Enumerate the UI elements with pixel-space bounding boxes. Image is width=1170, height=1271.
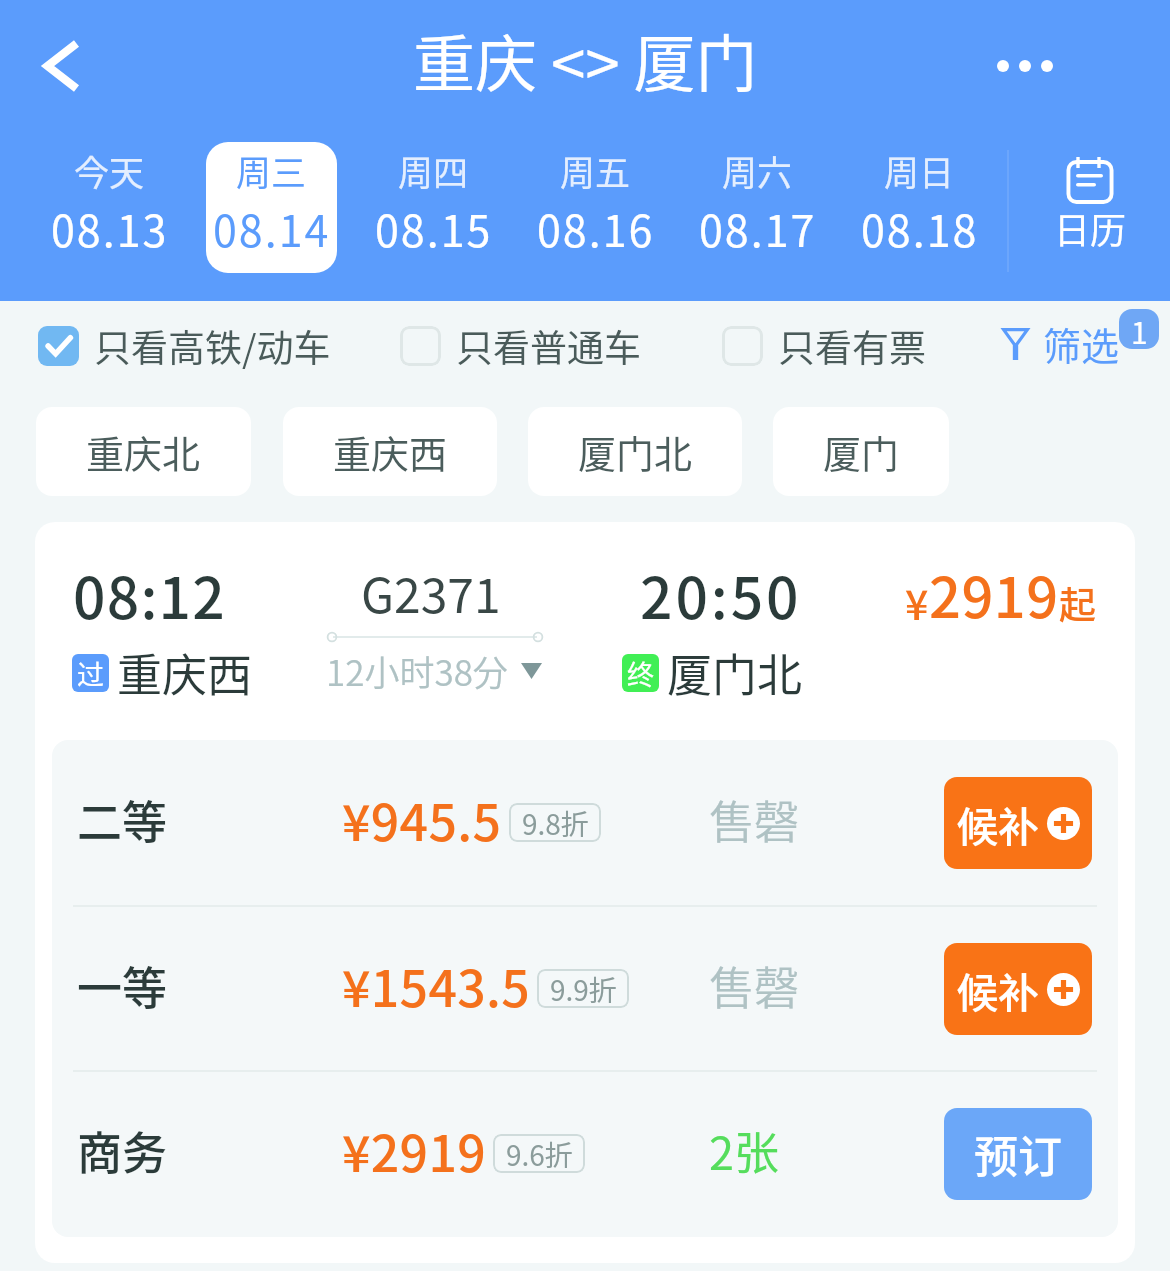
staticText: 候补 [957,794,1039,853]
staticText: 售磬 [709,787,800,852]
staticText: 周五 [560,145,631,196]
staticText: 重庆西 [333,424,448,479]
staticText: 厦门北 [667,640,803,705]
button[interactable]: 日历 [1010,148,1170,270]
staticText: 过 [77,654,104,692]
button[interactable]: 周日 [854,142,985,273]
staticText: 9.8折 [522,803,589,842]
staticText: ¥945.5 [342,783,502,855]
button[interactable]: 厦门北 [528,407,742,496]
button[interactable]: 08:12 [35,522,1135,740]
button[interactable]: More options [979,20,1071,112]
staticText: 今天 [74,145,145,196]
staticText: 一等 [77,953,168,1018]
staticText: 周六 [722,145,793,196]
staticText: 1 [1131,309,1148,349]
staticText: 售磬 [709,953,800,1018]
staticText: 08.14 [213,197,331,259]
staticText: 周三 [236,145,307,196]
button[interactable]: 重庆西 [283,407,497,496]
staticText: 9.9折 [550,969,617,1008]
staticText: 12小时38分 [326,645,508,696]
staticText: 日历 [1054,202,1127,254]
button[interactable]: 重庆北 [36,407,251,496]
staticText: 08.13 [51,197,169,259]
staticText: ¥2919 [342,1114,486,1186]
staticText: 2张 [709,1118,779,1183]
staticText: 厦门 [823,424,900,479]
button[interactable]: 周四 [368,142,499,273]
staticText: 重庆北 [86,424,201,479]
staticText: 周日 [884,145,955,196]
button[interactable]: 只看普通车 [400,319,641,373]
staticText: 终 [627,654,654,692]
staticText: 08.18 [861,197,979,259]
staticText: G2371 [361,557,501,627]
staticText: ¥ [905,572,929,631]
button[interactable]: 厦门 [773,407,949,496]
staticText: 只看有票 [778,319,926,373]
staticText: 候补 [957,960,1039,1019]
button[interactable]: 筛选 [1002,316,1120,371]
staticText: 20:50 [640,553,802,636]
staticText: 只看普通车 [456,319,641,373]
button[interactable]: 今天 [44,142,175,273]
staticText: 起 [1059,576,1096,630]
staticText: 商务 [77,1118,168,1183]
button[interactable]: 只看有票 [722,319,926,373]
staticText: 重庆西 [117,640,253,705]
staticText: 2919 [929,553,1059,634]
staticText: 重庆 <> 厦门 [413,15,758,105]
button[interactable]: 周五 [530,142,661,273]
button[interactable]: Back [14,18,110,114]
staticText: 08:12 [73,553,226,636]
staticText: 08.16 [537,197,655,259]
staticText: 只看高铁/动车 [94,319,331,373]
staticText: 08.15 [375,197,493,259]
staticText: 厦门北 [578,424,693,479]
staticText: 08.17 [699,197,817,259]
button[interactable]: 预订 [944,1108,1092,1200]
button[interactable]: 周三 [206,142,337,273]
staticText: 二等 [77,787,168,852]
button[interactable]: 候补 [944,777,1092,869]
staticText: 9.6折 [506,1134,573,1173]
button[interactable]: 周六 [692,142,823,273]
button[interactable]: 只看高铁/动车 [38,319,331,373]
staticText: 预订 [974,1122,1062,1186]
staticText: ¥1543.5 [342,949,530,1021]
staticText: 周四 [398,145,469,196]
button[interactable]: 候补 [944,943,1092,1035]
staticText: 筛选 [1043,316,1120,371]
